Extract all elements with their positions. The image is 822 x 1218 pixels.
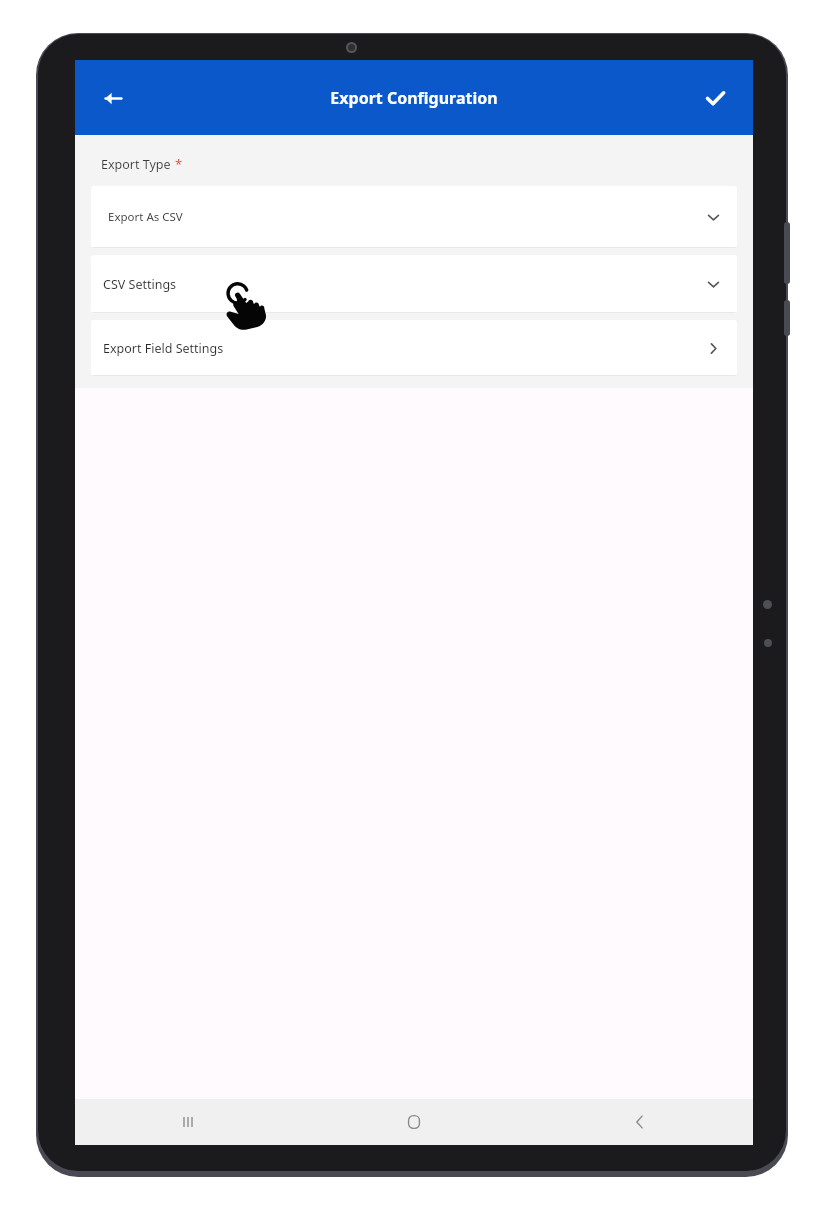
button[interactable]: Export Field Settings <box>91 320 737 376</box>
staticText: Export Field Settings <box>103 340 224 357</box>
button[interactable]: CSV Settings <box>91 255 737 313</box>
staticText: Export Configuration <box>330 87 498 109</box>
button[interactable]: Back <box>87 72 139 124</box>
button[interactable]: Back <box>527 1099 753 1145</box>
staticText: * <box>175 155 183 173</box>
button[interactable]: Recent apps <box>75 1099 301 1145</box>
staticText: Export Type <box>101 156 171 173</box>
staticText: Export As CSV <box>108 209 183 225</box>
staticText: CSV Settings <box>103 276 177 293</box>
button[interactable]: Export As CSV <box>91 186 737 248</box>
button[interactable]: Home <box>301 1099 527 1145</box>
button[interactable]: Confirm <box>689 72 741 124</box>
